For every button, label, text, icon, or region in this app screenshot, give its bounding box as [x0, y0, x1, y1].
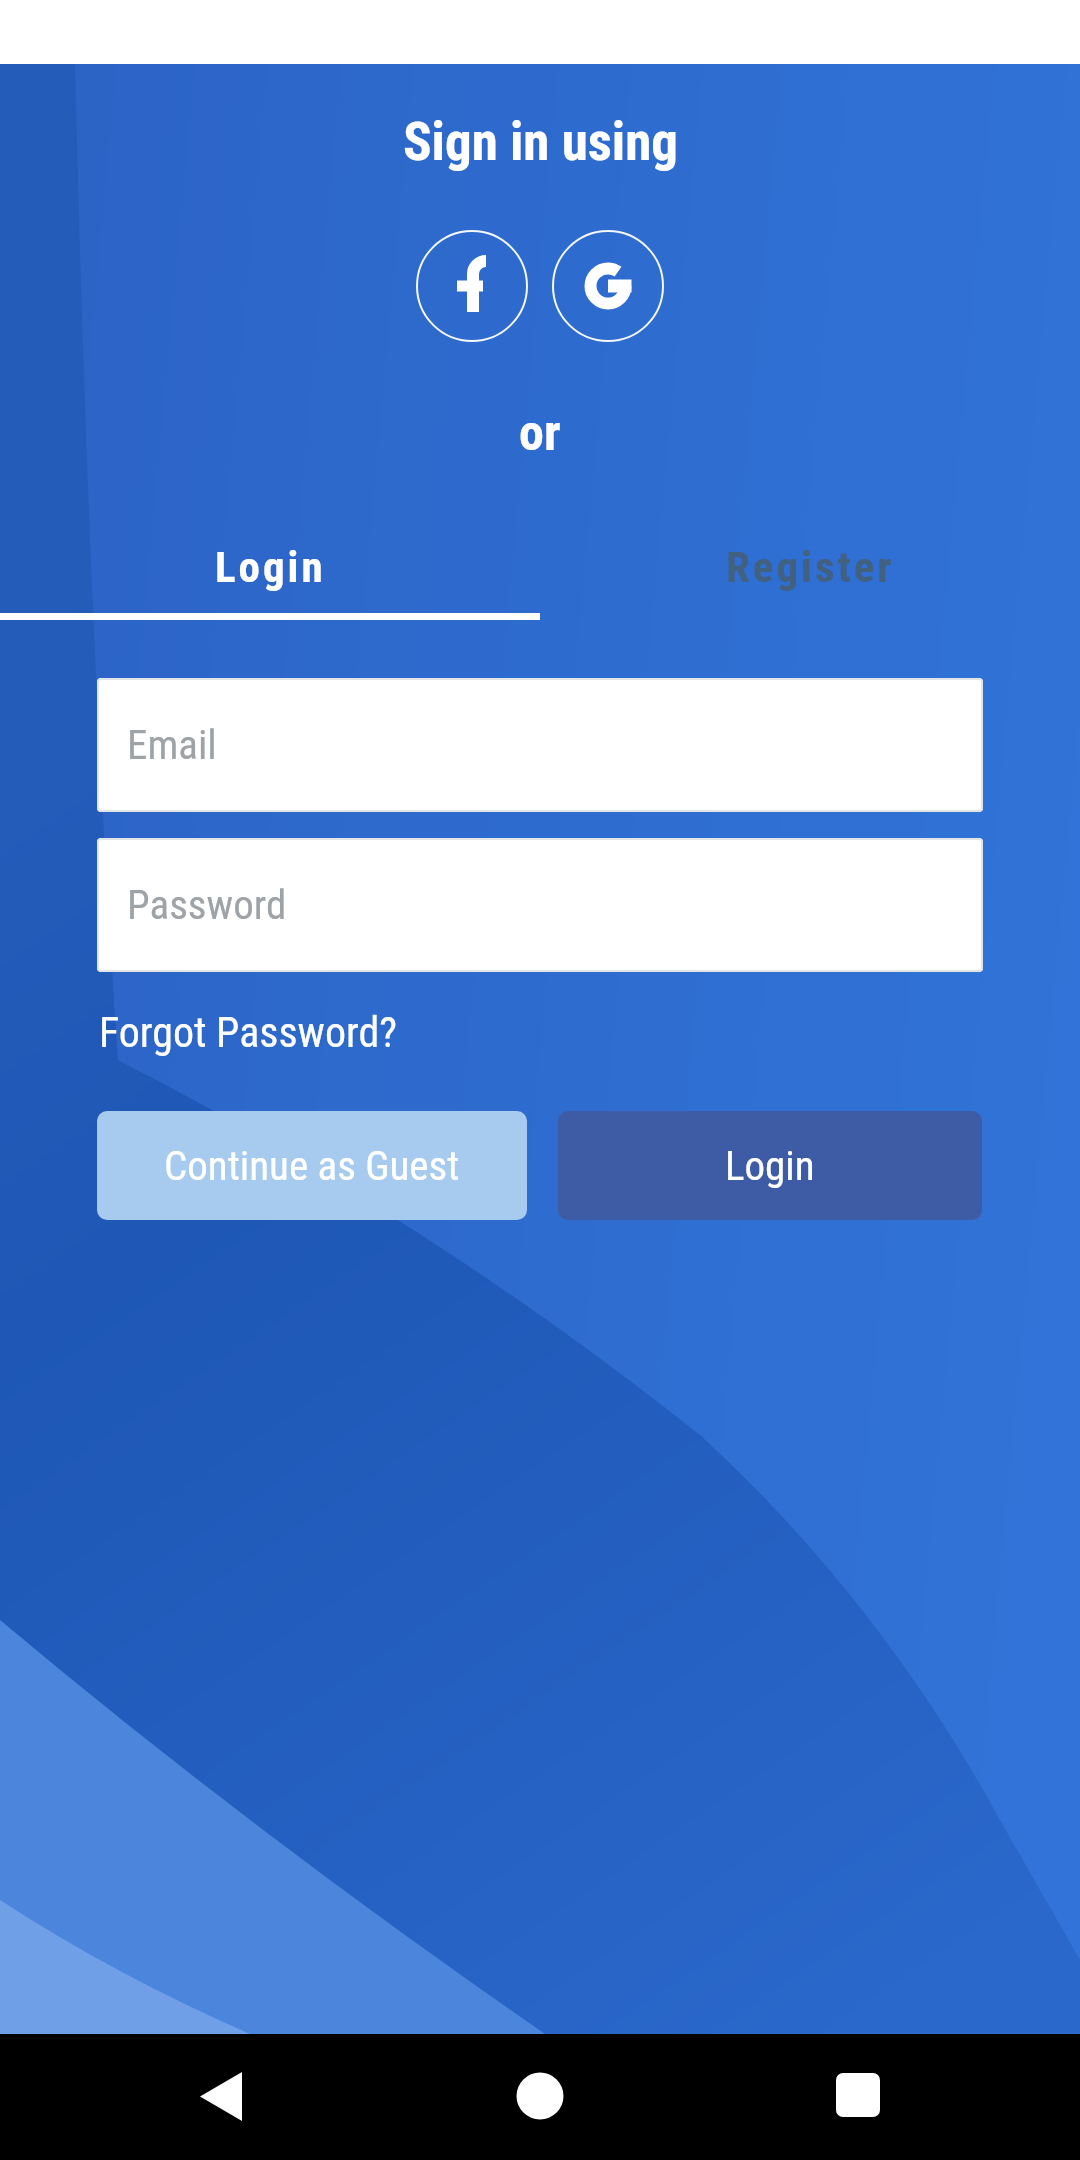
- button[interactable]: [552, 230, 664, 342]
- staticText: Sign in using: [403, 111, 678, 173]
- button[interactable]: Register: [540, 524, 1080, 609]
- button[interactable]: Email: [97, 678, 983, 812]
- button[interactable]: Continue as Guest: [97, 1111, 527, 1220]
- staticText: Password: [127, 881, 287, 929]
- staticText: Login: [725, 1142, 815, 1190]
- staticText: or: [519, 404, 561, 463]
- button[interactable]: [798, 2040, 918, 2152]
- button[interactable]: Forgot Password?: [99, 1005, 397, 1059]
- button[interactable]: Login: [558, 1111, 982, 1220]
- staticText: Forgot Password?: [99, 1008, 397, 1057]
- staticText: Continue as Guest: [164, 1142, 460, 1190]
- staticText: Login: [215, 542, 326, 592]
- button[interactable]: Login: [0, 524, 540, 609]
- staticText: Email: [127, 721, 217, 769]
- button[interactable]: [162, 2040, 282, 2152]
- button[interactable]: [480, 2040, 600, 2152]
- button[interactable]: [416, 230, 528, 342]
- staticText: Register: [726, 542, 895, 592]
- button[interactable]: Password: [97, 838, 983, 972]
